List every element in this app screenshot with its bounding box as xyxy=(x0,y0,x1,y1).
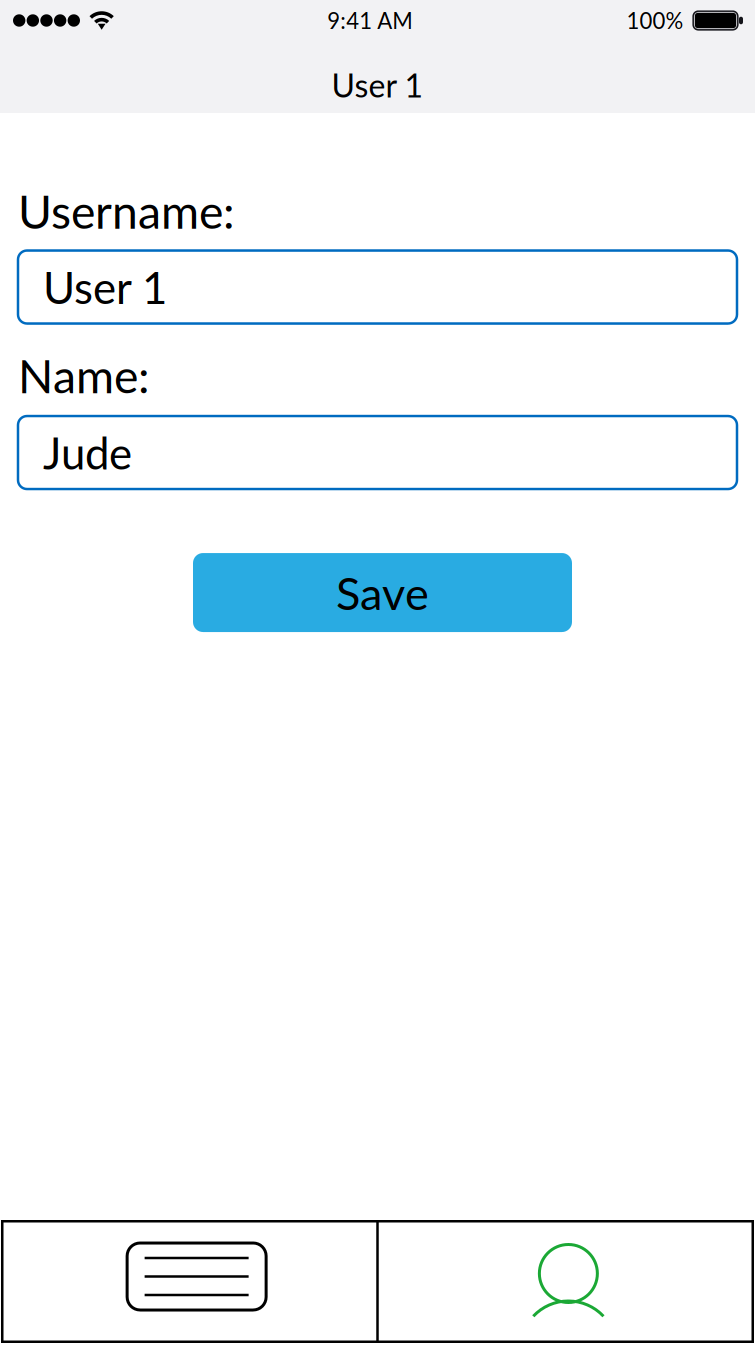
staticText: Username: xyxy=(18,183,235,238)
staticText: User 1 xyxy=(331,66,423,104)
staticText: 9:41 AM xyxy=(327,7,413,34)
staticText: User 1 xyxy=(43,261,167,313)
staticText: Save xyxy=(336,565,429,620)
button[interactable]: List xyxy=(1,1220,376,1343)
staticText: 100% xyxy=(626,7,683,34)
staticText: Name: xyxy=(18,347,150,403)
button[interactable]: Profile xyxy=(379,1220,754,1343)
button[interactable]: Save xyxy=(193,553,572,632)
staticText: Jude xyxy=(43,426,132,479)
